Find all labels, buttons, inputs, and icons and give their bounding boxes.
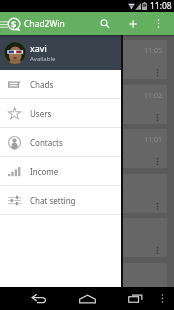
button[interactable]: Search xyxy=(96,12,114,35)
button[interactable]: 11:02 xyxy=(5,85,167,124)
staticText: Available xyxy=(30,55,56,63)
button[interactable]: More options xyxy=(5,218,167,257)
button[interactable]: More options xyxy=(153,68,162,77)
button[interactable]: More options xyxy=(150,12,166,35)
button[interactable]: Open navigation drawer xyxy=(0,17,10,31)
staticText: 11:01 xyxy=(144,135,162,145)
staticText: xavi xyxy=(30,42,47,54)
button[interactable]: More options xyxy=(153,113,162,122)
button[interactable]: 11:01 xyxy=(5,129,167,168)
staticText: 11:08 xyxy=(150,0,172,12)
button[interactable]: More options xyxy=(5,263,167,302)
button[interactable]: More options xyxy=(5,174,167,213)
button[interactable]: Income xyxy=(0,157,121,186)
button[interactable]: More options xyxy=(153,291,162,300)
button[interactable]: Chat setting xyxy=(0,186,121,215)
staticText: Contacts xyxy=(30,137,63,148)
button[interactable]: Chads xyxy=(0,70,121,99)
staticText: Chad2Win xyxy=(24,18,65,30)
button[interactable]: More options xyxy=(153,246,162,255)
button[interactable]: 11:05 xyxy=(5,40,167,79)
button[interactable]: Users xyxy=(0,99,121,128)
staticText: Chat setting xyxy=(30,195,76,206)
staticText: Users xyxy=(30,108,52,119)
button[interactable]: Recent apps xyxy=(127,287,144,310)
staticText: Chads xyxy=(30,79,54,90)
button[interactable]: More options xyxy=(156,287,168,310)
button[interactable]: xavi xyxy=(0,35,121,70)
button[interactable]: Home xyxy=(78,287,96,310)
button[interactable]: Back xyxy=(30,287,48,310)
button[interactable]: More options xyxy=(153,157,162,166)
button[interactable]: Contacts xyxy=(0,128,121,157)
staticText: 11:05 xyxy=(144,46,162,56)
staticText: Income xyxy=(30,166,59,177)
button[interactable]: More options xyxy=(153,202,162,211)
staticText: $ xyxy=(11,18,17,30)
staticText: 11:02 xyxy=(144,91,162,101)
button[interactable]: Add xyxy=(124,12,142,35)
